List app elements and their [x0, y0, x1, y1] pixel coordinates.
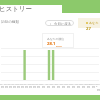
- staticText: ヒストリー: [0, 5, 33, 13]
- staticText: 日: [72, 85, 75, 89]
- staticText: 日: [17, 85, 20, 89]
- staticText: 4/10: [36, 82, 41, 85]
- button[interactable]: ‹: [45, 20, 74, 26]
- staticText: 4/18: [76, 82, 81, 85]
- staticText: 日: [1, 85, 4, 89]
- staticText: 今日に戻る: [54, 22, 72, 26]
- staticText: 4/15: [61, 82, 66, 85]
- staticText: あなたの順位: [47, 37, 65, 41]
- staticText: 日: [92, 85, 95, 89]
- staticText: 27: [86, 26, 91, 31]
- staticText: 日: [42, 85, 45, 89]
- staticText: km/h: [56, 44, 62, 47]
- staticText: 4/8: [28, 82, 32, 85]
- staticText: 4/4: [12, 82, 16, 85]
- staticText: あなた: [89, 21, 99, 25]
- staticText: 4/21: [91, 82, 96, 85]
- staticText: 日: [67, 85, 70, 89]
- staticText: 4/17: [71, 82, 76, 85]
- staticText: 4/7: [24, 82, 28, 85]
- staticText: 日: [62, 85, 65, 89]
- staticText: 日: [29, 85, 32, 89]
- staticText: 日: [97, 88, 100, 92]
- staticText: 4/5: [16, 82, 20, 85]
- staticText: 4/14: [56, 82, 61, 85]
- button[interactable]: あなたの順位: [42, 33, 74, 48]
- button[interactable]: あなた: [78, 18, 100, 28]
- staticText: 4/2: [4, 82, 8, 85]
- staticText: 28.1: [47, 41, 56, 47]
- staticText: 日: [33, 85, 36, 89]
- staticText: 4/13: [51, 82, 56, 85]
- staticText: 4/3: [8, 82, 12, 85]
- staticText: 日: [82, 85, 85, 89]
- staticText: 日: [87, 85, 90, 89]
- staticText: 日: [13, 85, 16, 89]
- staticText: 日: [37, 85, 40, 89]
- staticText: 記録の種類: [1, 20, 20, 25]
- staticText: 4/11: [41, 82, 46, 85]
- staticText: 日: [21, 85, 24, 89]
- staticText: 日: [47, 85, 50, 89]
- staticText: 4/19: [81, 82, 86, 85]
- staticText: ‹: [50, 21, 52, 26]
- staticText: 日: [52, 85, 55, 89]
- staticText: 4/20: [86, 82, 91, 85]
- staticText: 日: [9, 85, 12, 89]
- staticText: 4/9: [32, 82, 36, 85]
- staticText: 日: [77, 85, 80, 89]
- staticText: 日: [25, 85, 28, 89]
- staticText: 4/12: [46, 82, 51, 85]
- staticText: 4/6: [20, 82, 24, 85]
- staticText: 日: [5, 85, 8, 89]
- staticText: 4/1: [0, 82, 4, 85]
- staticText: 4/22: [96, 82, 100, 88]
- staticText: 4/16: [66, 82, 71, 85]
- staticText: 日: [57, 85, 60, 89]
